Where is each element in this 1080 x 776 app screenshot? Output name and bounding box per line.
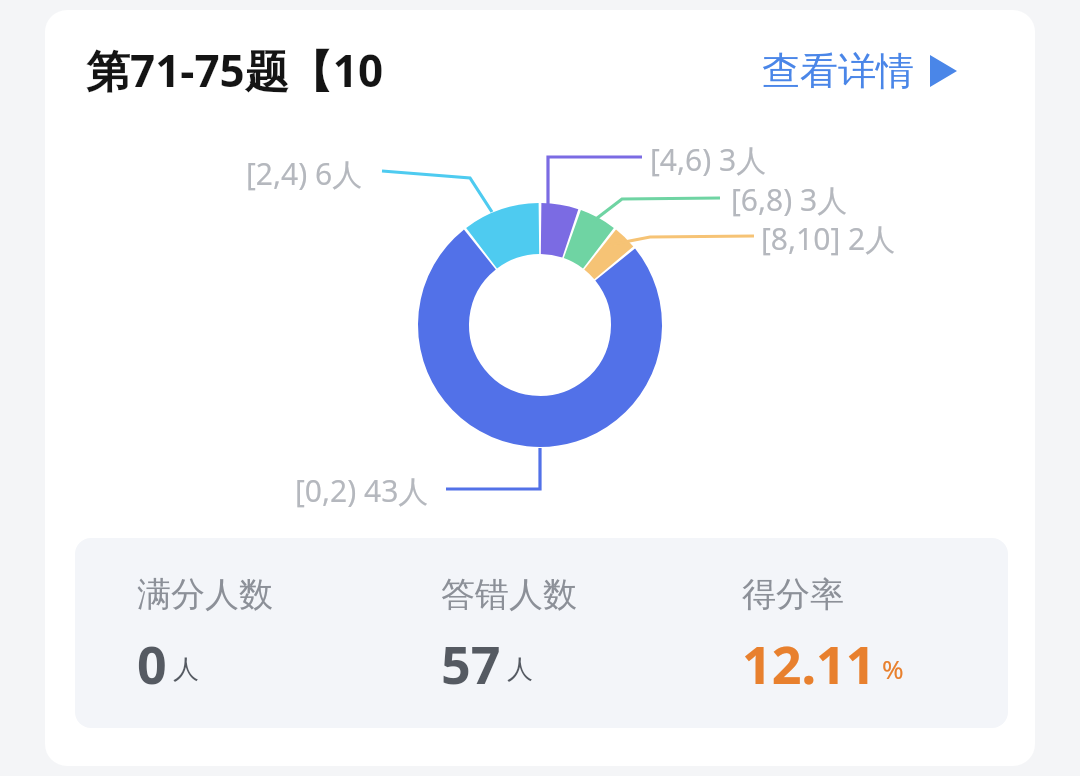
staticText: 12.11 [742, 628, 876, 692]
staticText: % [882, 651, 904, 686]
staticText: 人 [507, 653, 533, 686]
staticText: 第71-75题【10分】 [86, 40, 466, 102]
staticText: [4,6) 3人 [650, 139, 767, 180]
staticText: 答错人数 [441, 573, 577, 616]
staticText: [6,8) 3人 [731, 179, 848, 220]
staticText: [8,10] 2人 [761, 218, 896, 259]
staticText: 满分人数 [137, 573, 273, 616]
staticText: 得分率 [742, 573, 844, 616]
staticText: 查看详情 [762, 47, 914, 95]
staticText: [0,2) 43人 [295, 470, 429, 511]
staticText: 人 [173, 653, 199, 686]
staticText: 57 [441, 628, 501, 692]
staticText: 0 [137, 628, 167, 692]
other: 查看详情 [926, 56, 956, 86]
staticText: [2,4) 6人 [246, 153, 363, 194]
button[interactable]: 查看详情 [762, 42, 988, 100]
